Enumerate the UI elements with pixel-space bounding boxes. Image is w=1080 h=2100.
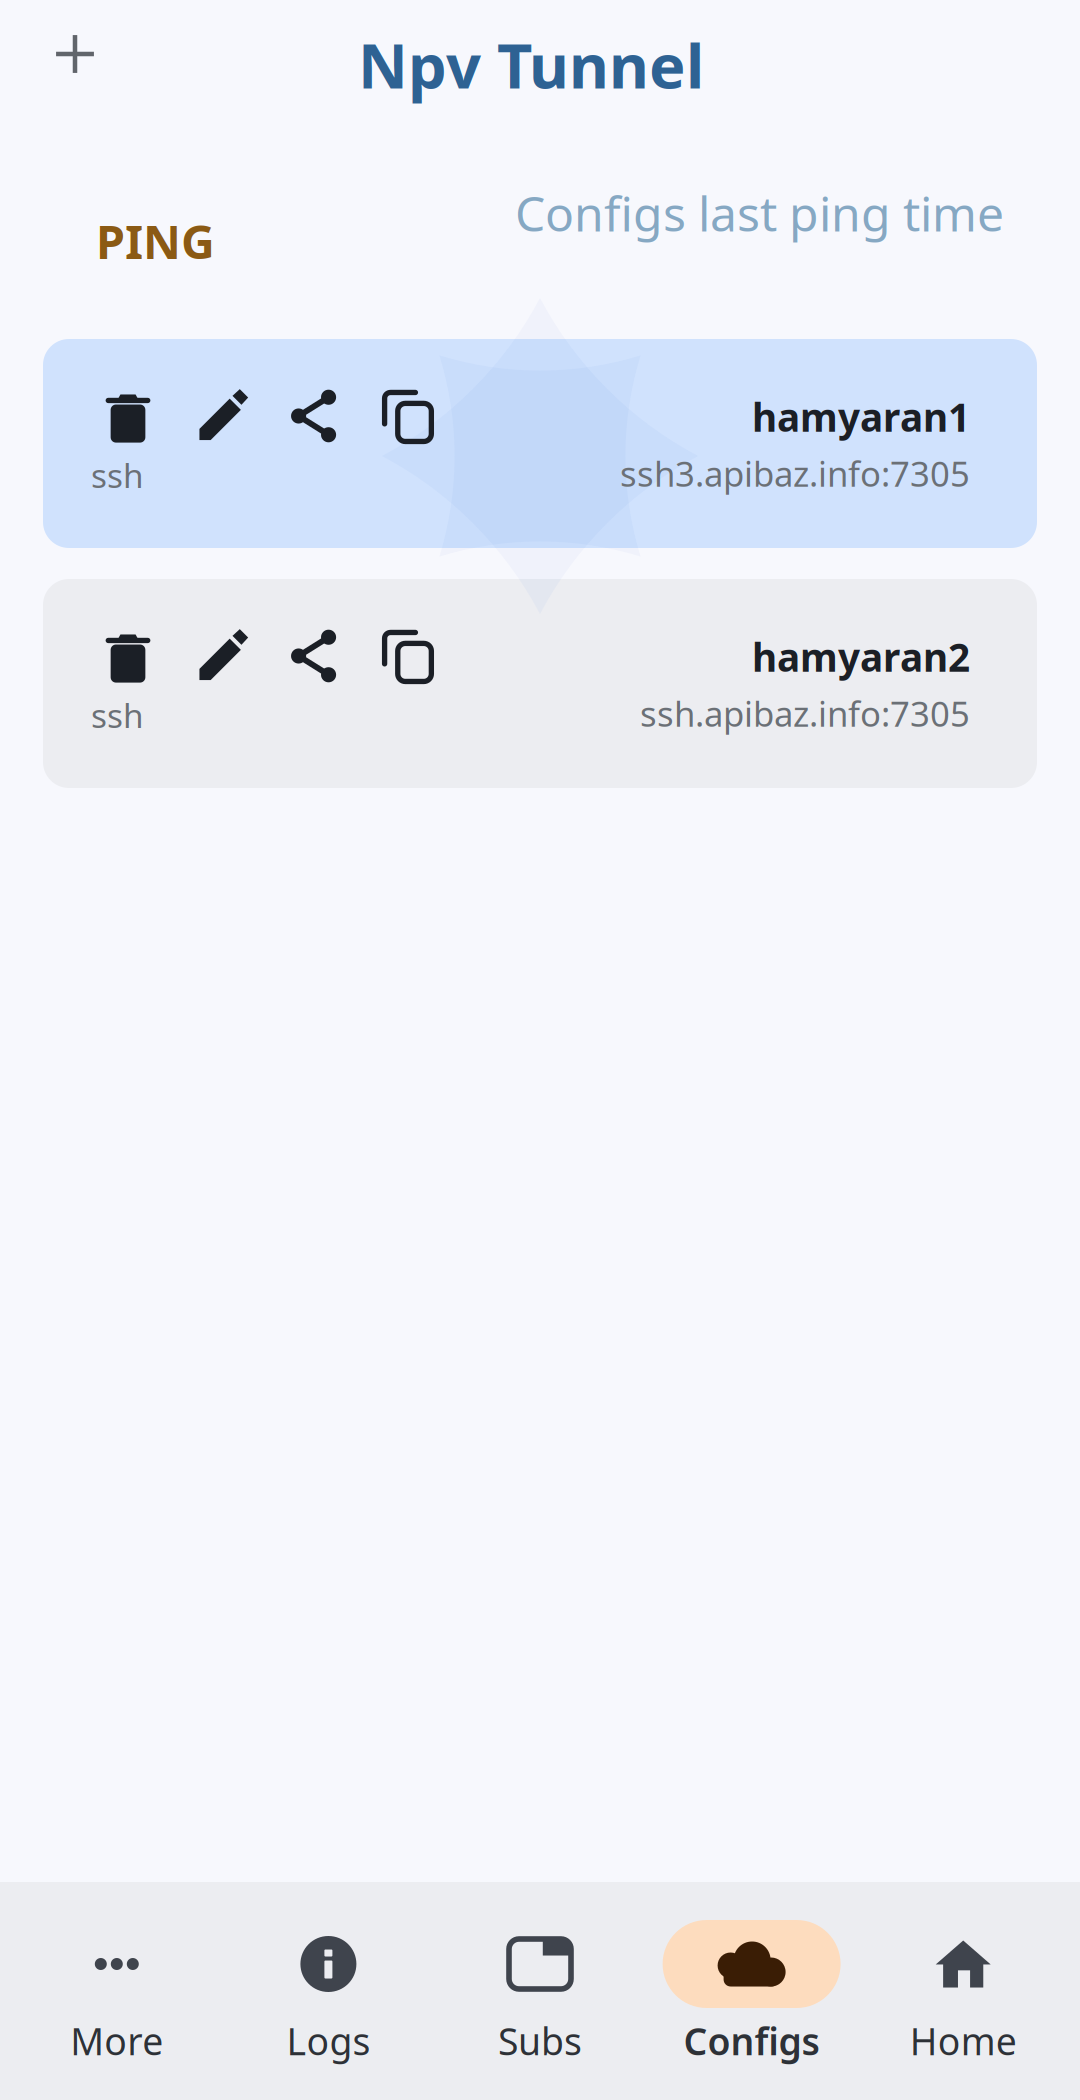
button[interactable]: ssh xyxy=(43,579,1037,788)
button[interactable]: Delete xyxy=(100,388,156,444)
button[interactable]: Delete xyxy=(100,628,156,684)
staticText: ssh.apibaz.info:7305 xyxy=(640,690,970,736)
staticText: ssh xyxy=(91,453,144,497)
button[interactable]: More xyxy=(11,1882,223,2066)
button[interactable]: Share xyxy=(286,628,342,684)
staticText: ssh3.apibaz.info:7305 xyxy=(620,450,970,496)
staticText: Configs last ping time xyxy=(515,181,1004,245)
button[interactable]: Home xyxy=(857,1882,1069,2066)
staticText: PING xyxy=(96,210,215,272)
button[interactable]: Edit xyxy=(193,628,249,684)
staticText: hamyaran1 xyxy=(752,391,970,442)
staticText: Configs xyxy=(684,2016,820,2066)
staticText: Logs xyxy=(286,2016,370,2066)
staticText: Npv Tunnel xyxy=(358,24,704,105)
button[interactable]: Configs xyxy=(646,1882,857,2066)
button[interactable]: Share xyxy=(286,388,342,444)
button[interactable]: Edit xyxy=(193,388,249,444)
staticText: Subs xyxy=(498,2016,582,2066)
staticText: ssh xyxy=(91,693,144,737)
staticText: hamyaran2 xyxy=(752,631,970,682)
button[interactable]: Logs xyxy=(223,1882,434,2066)
staticText: More xyxy=(70,2016,163,2066)
button[interactable]: Add xyxy=(27,6,123,102)
button[interactable]: Subs xyxy=(434,1882,646,2066)
staticText: Home xyxy=(910,2016,1017,2066)
button[interactable]: Copy xyxy=(379,388,435,444)
button[interactable]: Copy xyxy=(379,628,435,684)
button[interactable]: ssh xyxy=(43,339,1037,548)
